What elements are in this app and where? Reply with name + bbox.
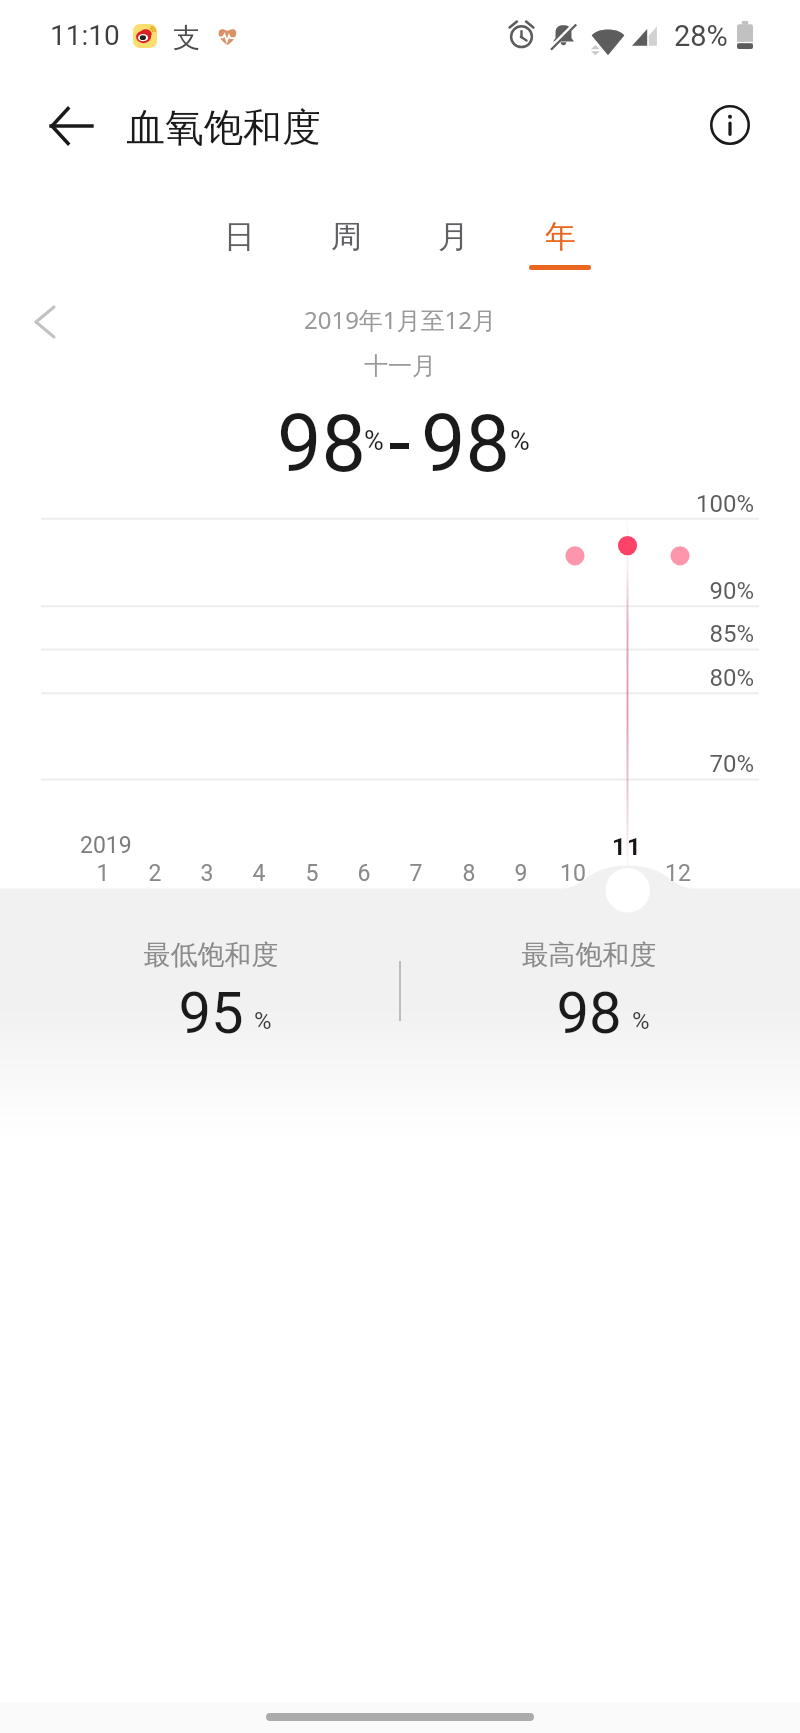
staticText: 98: [439, 979, 739, 1047]
staticText: 98: [421, 398, 510, 478]
button[interactable]: Previous period: [19, 296, 71, 348]
staticText: 7: [386, 860, 446, 887]
staticText: 最高饱和度: [439, 938, 739, 972]
staticText: 85%: [0, 620, 754, 648]
staticText: 90%: [0, 577, 754, 605]
button[interactable]: 年: [514, 199, 606, 281]
staticText: 80%: [0, 664, 754, 692]
staticText: %: [364, 425, 384, 457]
staticText: 8: [439, 860, 499, 887]
button[interactable]: 周: [300, 199, 392, 281]
staticText: 2019年1月至12月: [0, 303, 800, 336]
staticText: 血氧饱和度: [126, 103, 321, 152]
staticText: 100%: [0, 490, 754, 518]
button[interactable]: Back: [38, 93, 104, 159]
staticText: 5: [282, 860, 342, 887]
staticText: %: [254, 1007, 272, 1035]
staticText: 12: [648, 860, 708, 887]
staticText: 28%: [674, 19, 728, 53]
staticText: %: [632, 1007, 650, 1035]
staticText: 年: [545, 217, 576, 256]
button[interactable]: 月: [407, 199, 499, 281]
staticText: 2019: [80, 832, 132, 859]
staticText: 4: [229, 860, 289, 887]
staticText: 日: [224, 217, 255, 256]
button[interactable]: 日: [193, 199, 285, 281]
staticText: 最低饱和度: [61, 938, 361, 972]
staticText: 支: [173, 21, 200, 55]
staticText: 98: [277, 398, 366, 478]
staticText: 月: [438, 217, 469, 256]
staticText: 2: [125, 860, 185, 887]
staticText: 周: [331, 217, 362, 256]
staticText: 11: [597, 833, 657, 861]
staticText: 10: [543, 860, 603, 887]
staticText: 十一月: [0, 351, 800, 381]
staticText: 6: [334, 860, 394, 887]
button[interactable]: Info: [700, 95, 760, 155]
staticText: 95: [61, 979, 361, 1047]
staticText: %: [510, 425, 530, 457]
staticText: 70%: [0, 750, 754, 778]
staticText: 1: [73, 860, 133, 887]
staticText: 11:10: [50, 19, 120, 52]
staticText: 9: [491, 860, 551, 887]
staticText: 3: [177, 860, 237, 887]
